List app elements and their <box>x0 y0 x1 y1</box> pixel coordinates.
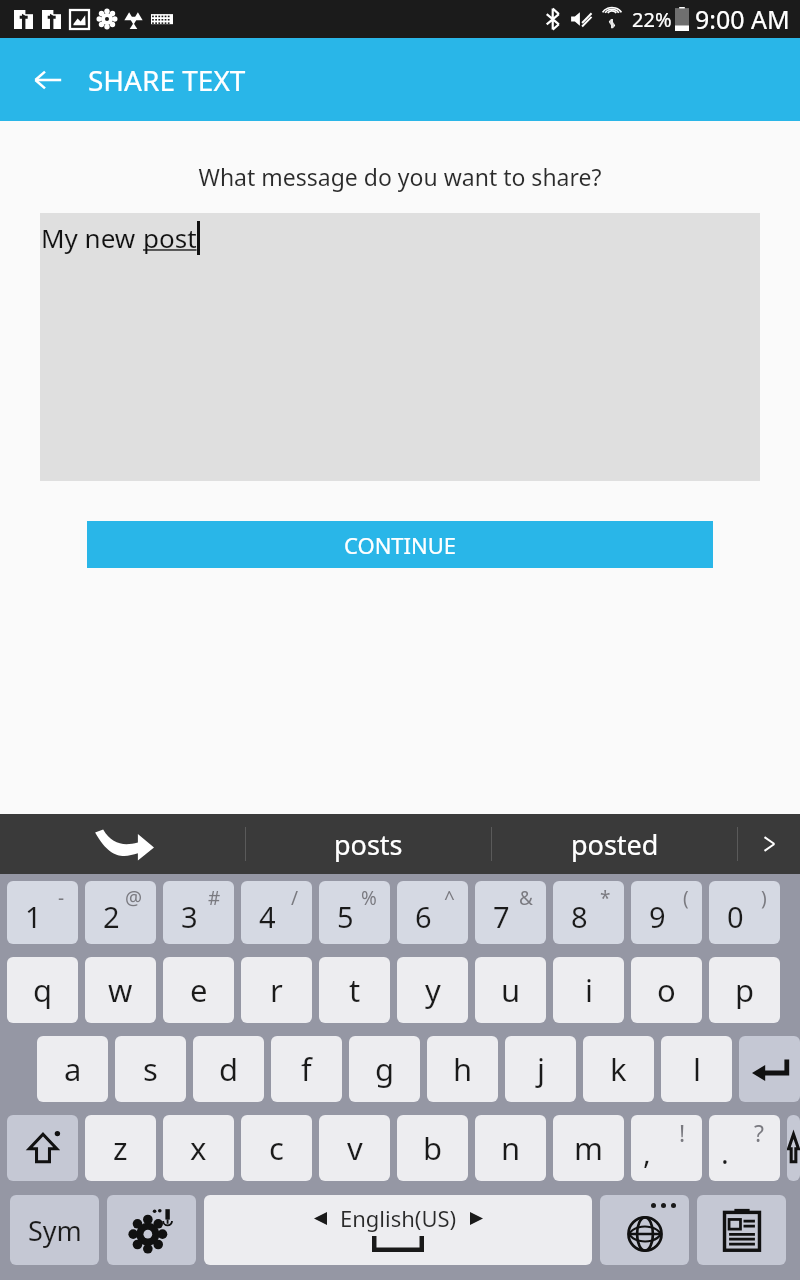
staticText: 22% <box>632 6 672 33</box>
staticText: m <box>574 1127 603 1169</box>
button[interactable]: t <box>319 957 390 1023</box>
button[interactable]: s <box>115 1036 186 1102</box>
button[interactable]: l <box>661 1036 732 1102</box>
staticText: 0 <box>727 897 744 936</box>
button[interactable]: posts <box>246 814 491 874</box>
button[interactable]: o <box>631 957 702 1023</box>
button[interactable]: r <box>241 957 312 1023</box>
button[interactable]: Clipboard <box>697 1195 786 1265</box>
button[interactable]: 4 <box>241 881 312 944</box>
button[interactable]: 7 <box>475 881 546 944</box>
button[interactable]: More suggestions <box>738 814 800 874</box>
staticText: k <box>610 1048 627 1090</box>
button[interactable]: e <box>163 957 234 1023</box>
button[interactable]: 1 <box>7 881 78 944</box>
button[interactable]: f <box>271 1036 342 1102</box>
staticText: CONTINUE <box>344 530 457 560</box>
button[interactable]: 8 <box>553 881 624 944</box>
button[interactable]: Shift <box>7 1115 78 1181</box>
staticText: 9 <box>649 897 666 936</box>
staticText: w <box>108 969 133 1011</box>
staticText: Sym <box>28 1212 82 1249</box>
staticText: , <box>643 1133 651 1172</box>
button[interactable]: 3 <box>163 881 234 944</box>
button[interactable]: u <box>475 957 546 1023</box>
button[interactable]: w <box>85 957 156 1023</box>
button[interactable]: 5 <box>319 881 390 944</box>
button[interactable]: v <box>319 1115 390 1181</box>
button[interactable]: Shift <box>787 1115 800 1181</box>
staticText: posted <box>571 826 659 863</box>
button[interactable]: Change keyboard language <box>600 1195 689 1265</box>
staticText: post <box>143 220 197 255</box>
staticText: n <box>501 1127 521 1169</box>
button[interactable]: g <box>349 1036 420 1102</box>
staticText: English(US) <box>340 1203 457 1233</box>
staticText: h <box>453 1048 473 1090</box>
staticText: ( <box>683 885 689 911</box>
button[interactable]: i <box>553 957 624 1023</box>
button[interactable]: z <box>85 1115 156 1181</box>
staticText: 6 <box>415 897 432 936</box>
button[interactable]: Settings and voice input <box>107 1195 196 1265</box>
staticText: ) <box>761 885 767 911</box>
button[interactable]: m <box>553 1115 624 1181</box>
staticText: ! <box>679 1117 686 1148</box>
staticText: What message do you want to share? <box>0 161 800 192</box>
staticText: x <box>190 1127 207 1169</box>
staticText: q <box>33 969 53 1011</box>
button[interactable]: q <box>7 957 78 1023</box>
button[interactable]: n <box>475 1115 546 1181</box>
button[interactable]: d <box>193 1036 264 1102</box>
staticText: - <box>58 885 65 911</box>
button[interactable]: , <box>631 1115 702 1181</box>
button[interactable]: Space <box>204 1195 592 1265</box>
button[interactable]: My new <box>40 213 760 481</box>
staticText: 8 <box>571 897 588 936</box>
staticText: 2 <box>103 897 120 936</box>
staticText: / <box>291 885 299 911</box>
staticText: r <box>270 969 283 1011</box>
staticText: c <box>269 1127 284 1169</box>
staticText: s <box>143 1048 158 1090</box>
staticText: . <box>721 1133 729 1172</box>
button[interactable]: c <box>241 1115 312 1181</box>
button[interactable]: y <box>397 957 468 1023</box>
button[interactable]: posted <box>492 814 737 874</box>
button[interactable]: 2 <box>85 881 156 944</box>
button[interactable]: a <box>37 1036 108 1102</box>
button[interactable]: x <box>163 1115 234 1181</box>
button[interactable]: Suggestion arrow <box>0 814 245 874</box>
staticText: ^ <box>444 885 455 911</box>
button[interactable]: p <box>709 957 780 1023</box>
staticText: # <box>208 885 221 911</box>
button[interactable]: Back <box>26 58 70 102</box>
staticText: SHARE TEXT <box>88 61 246 99</box>
staticText: b <box>423 1127 443 1169</box>
button[interactable]: j <box>505 1036 576 1102</box>
button[interactable]: Enter <box>739 1036 800 1102</box>
staticText: g <box>375 1048 395 1090</box>
button[interactable]: CONTINUE <box>87 521 713 568</box>
button[interactable]: 9 <box>631 881 702 944</box>
staticText: z <box>113 1127 128 1169</box>
staticText: 9:00 AM <box>695 2 790 36</box>
staticText: 7 <box>493 897 510 936</box>
button[interactable]: Sym <box>10 1195 99 1265</box>
staticText: posts <box>334 826 403 863</box>
staticText: v <box>347 1127 363 1169</box>
staticText: 1 <box>25 897 42 936</box>
button[interactable]: . <box>709 1115 780 1181</box>
staticText: i <box>585 969 593 1011</box>
staticText: 3 <box>181 897 198 936</box>
staticText: p <box>735 969 755 1011</box>
staticText: % <box>361 885 377 911</box>
button[interactable]: h <box>427 1036 498 1102</box>
button[interactable]: 6 <box>397 881 468 944</box>
button[interactable]: 0 <box>709 881 780 944</box>
button[interactable]: k <box>583 1036 654 1102</box>
button[interactable]: b <box>397 1115 468 1181</box>
staticText: ? <box>754 1117 764 1148</box>
staticText: f <box>301 1048 312 1090</box>
staticText: @ <box>125 885 143 911</box>
